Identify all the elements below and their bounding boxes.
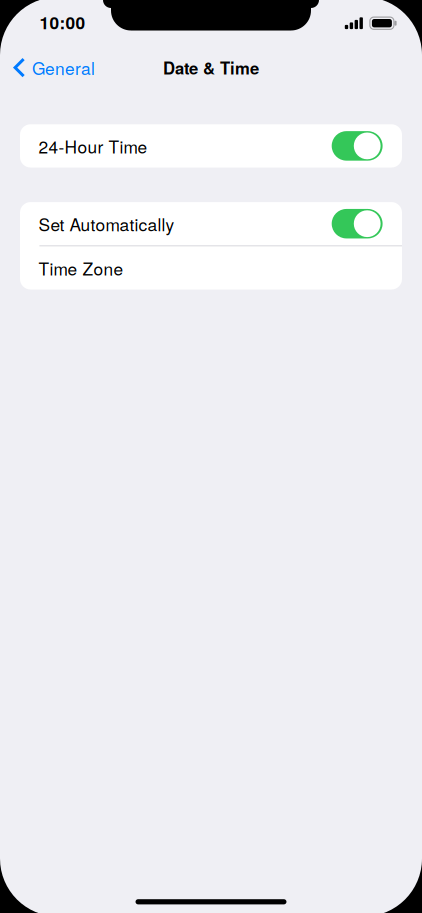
button[interactable]: Set Automatically	[20, 202, 402, 245]
staticText: 10:00	[40, 10, 86, 35]
staticText: Date & Time	[163, 56, 259, 80]
staticText: Set Automatically	[39, 211, 175, 236]
staticText: Time Zone	[39, 255, 124, 280]
button[interactable]: 24-Hour Time	[20, 124, 402, 167]
button[interactable]: Time Zone	[20, 246, 402, 289]
button[interactable]: General	[0, 47, 105, 89]
staticText: General	[32, 55, 95, 80]
staticText: 24-Hour Time	[39, 133, 148, 158]
